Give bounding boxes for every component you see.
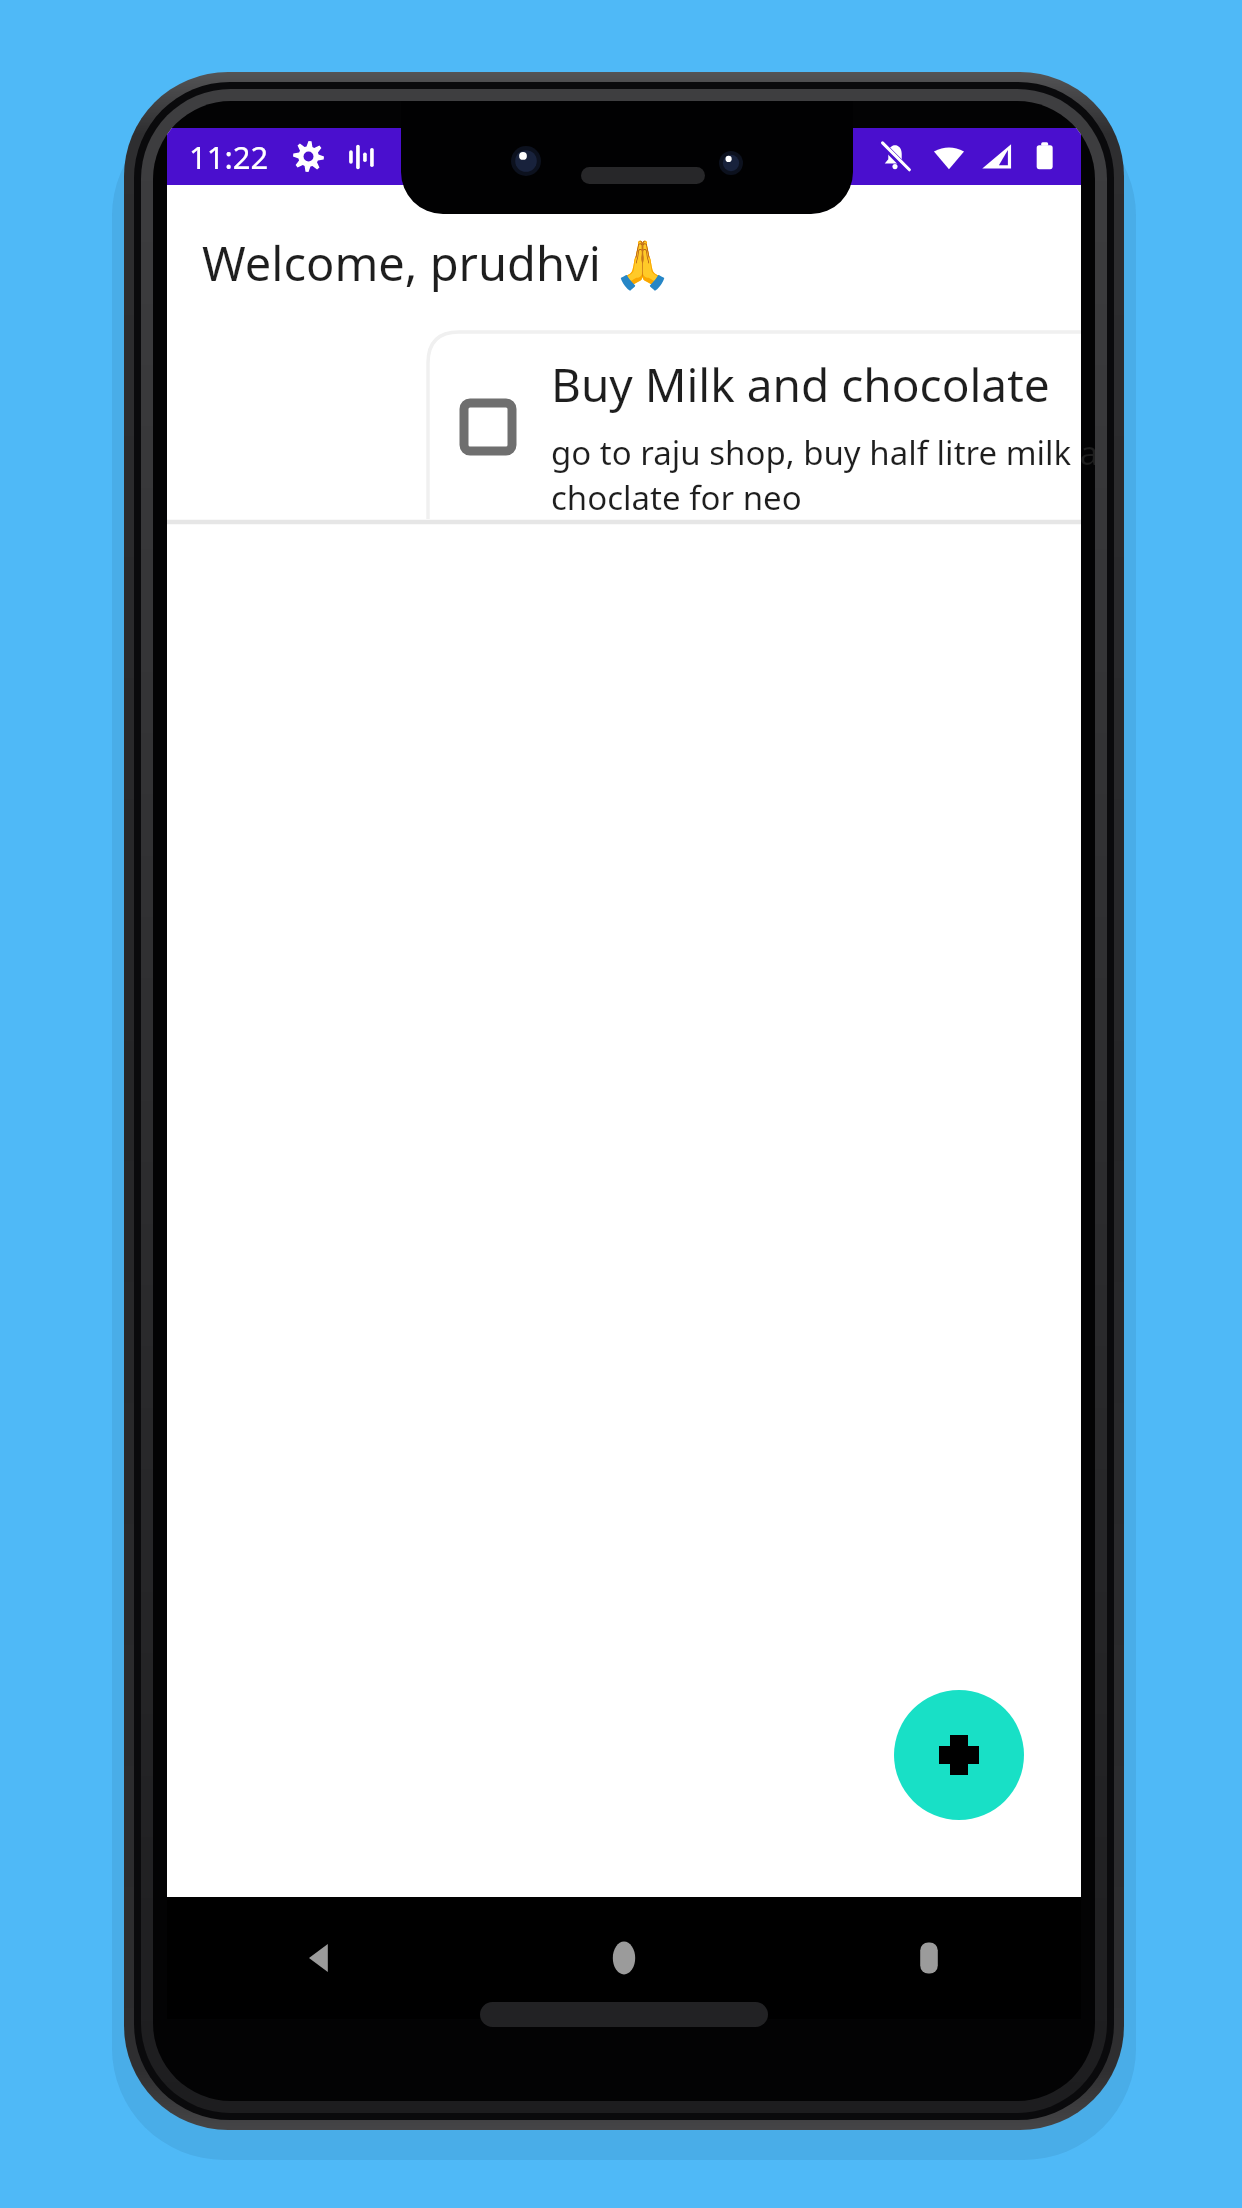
staticText: Welcome, prudhvi 🙏 xyxy=(202,231,672,295)
staticText: 11:22 xyxy=(189,136,269,178)
button[interactable]: Mark task complete xyxy=(167,327,1081,527)
button[interactable]: Add task xyxy=(894,1690,1024,1820)
button[interactable]: Recent apps xyxy=(776,1897,1081,2019)
button[interactable]: Mark task complete xyxy=(458,397,518,457)
button[interactable]: Back xyxy=(167,1897,471,2019)
staticText: go to raju shop, buy half litre milk and… xyxy=(551,430,1095,520)
button[interactable]: Home xyxy=(471,1897,776,2019)
staticText: Buy Milk and chocolate xyxy=(551,353,1050,416)
